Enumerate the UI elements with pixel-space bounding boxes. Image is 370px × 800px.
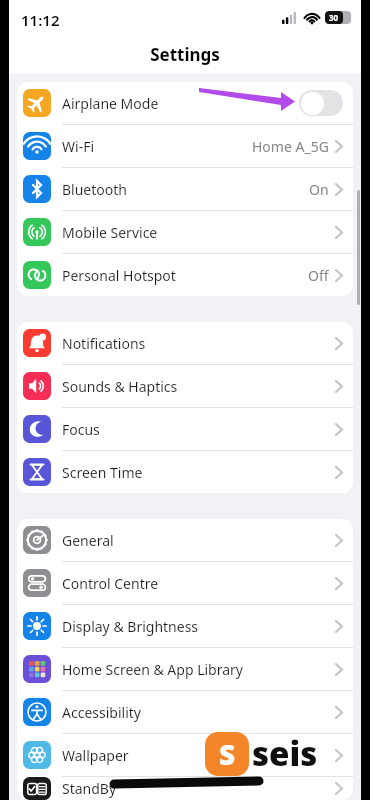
staticText: Focus xyxy=(62,420,335,439)
button[interactable]: Notifications xyxy=(17,322,353,365)
staticText: Bluetooth xyxy=(62,180,309,199)
button[interactable]: Wallpaper xyxy=(17,734,353,777)
staticText: On xyxy=(309,180,329,199)
button[interactable]: Screen Time xyxy=(17,451,353,493)
staticText: Screen Time xyxy=(62,463,335,482)
staticText: StandBy xyxy=(62,779,335,798)
staticText: Sounds & Haptics xyxy=(62,377,335,396)
staticText: Personal Hotspot xyxy=(62,266,308,285)
button[interactable]: Bluetooth xyxy=(17,168,353,211)
staticText: Airplane Mode xyxy=(62,94,299,113)
button[interactable]: General xyxy=(17,519,353,562)
staticText: 30 xyxy=(329,12,339,23)
button[interactable]: Wi-Fi xyxy=(17,125,353,168)
button[interactable]: Accessibility xyxy=(17,691,353,734)
staticText: Control Centre xyxy=(62,574,335,593)
button[interactable]: Airplane Mode xyxy=(17,82,353,125)
staticText: Home Screen & App Library xyxy=(62,660,335,679)
button[interactable]: Focus xyxy=(17,408,353,451)
staticText: Wi-Fi xyxy=(62,137,252,156)
button[interactable]: Sounds & Haptics xyxy=(17,365,353,408)
staticText: S xyxy=(219,735,236,773)
staticText: seis xyxy=(252,731,318,776)
staticText: Home A_5G xyxy=(252,137,329,156)
staticText: Wallpaper xyxy=(62,746,335,765)
button[interactable]: StandBy xyxy=(17,777,353,800)
staticText: General xyxy=(62,531,335,550)
button[interactable]: Control Centre xyxy=(17,562,353,605)
staticText: Notifications xyxy=(62,334,335,353)
staticText: Off xyxy=(308,266,329,285)
staticText: Settings xyxy=(150,43,220,66)
staticText: Mobile Service xyxy=(62,223,335,242)
button[interactable]: Home Screen & App Library xyxy=(17,648,353,691)
staticText: Display & Brightness xyxy=(62,617,335,636)
button[interactable]: Mobile Service xyxy=(17,211,353,254)
button[interactable]: Display & Brightness xyxy=(17,605,353,648)
staticText: Accessibility xyxy=(62,703,335,722)
button[interactable]: Personal Hotspot xyxy=(17,254,353,296)
staticText: 11:12 xyxy=(21,10,60,30)
